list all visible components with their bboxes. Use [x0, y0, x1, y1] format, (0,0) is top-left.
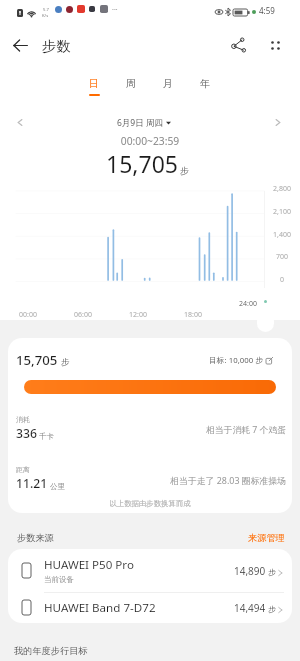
staticText: 相当于走了 28.03 圈标准操场 — [170, 474, 287, 486]
staticText: 06:00 — [68, 310, 98, 320]
button[interactable]: Share — [225, 31, 253, 59]
staticText: 来源管理 — [248, 532, 285, 544]
button[interactable]: Previous day — [11, 113, 29, 131]
staticText: 24:00 — [233, 299, 263, 309]
staticText: 我的年度步行目标 — [14, 645, 88, 657]
staticText: 相当于消耗 7 个鸡蛋 — [206, 424, 286, 436]
button[interactable]: 目标: 10,000 步 — [209, 355, 273, 366]
staticText: 日 — [77, 78, 111, 90]
staticText: 18:00 — [178, 310, 208, 320]
button[interactable]: 来源管理 — [248, 532, 285, 544]
button[interactable]: 6月9日 周四 — [117, 114, 171, 131]
button[interactable]: 周 — [114, 72, 148, 98]
staticText: 0 — [265, 275, 299, 285]
button[interactable]: 年 — [188, 72, 222, 98]
staticText: 步数 — [42, 37, 71, 55]
staticText: 2,800 — [265, 184, 299, 194]
staticText: 距离 — [16, 465, 30, 474]
staticText: 步 — [268, 604, 276, 614]
staticText: K/s — [42, 13, 49, 19]
staticText: 消耗 — [16, 415, 30, 424]
staticText: 15,705 — [106, 148, 178, 179]
button[interactable]: Back — [6, 31, 34, 59]
button[interactable]: HUAWEI Band 7-D72 — [8, 592, 292, 623]
button[interactable]: Next day — [269, 113, 287, 131]
staticText: 千卡 — [39, 432, 54, 441]
staticText: HUAWEI Band 7-D72 — [44, 600, 156, 616]
button[interactable]: Expand details — [257, 312, 274, 332]
staticText: HUAWEI P50 Pro — [44, 557, 134, 573]
staticText: 步 — [180, 165, 189, 176]
staticText: 步数来源 — [17, 532, 54, 544]
staticText: 15,705 — [16, 351, 58, 369]
staticText: 步 — [268, 567, 276, 577]
staticText: 以上数据由步数换算而成 — [0, 499, 300, 508]
staticText: 5.7 — [43, 7, 49, 13]
staticText: 目标: 10,000 步 — [209, 355, 263, 366]
staticText: ··· — [112, 5, 118, 15]
staticText: 11.21 — [16, 475, 48, 492]
staticText: 00:00 — [13, 310, 43, 320]
staticText: 700 — [265, 252, 299, 262]
button[interactable]: 月 — [151, 72, 185, 98]
staticText: 4:59 — [259, 5, 275, 16]
staticText: 年 — [188, 78, 222, 90]
staticText: 2,100 — [265, 207, 299, 217]
staticText: 14,890 — [234, 564, 266, 578]
button[interactable]: 日 — [77, 72, 111, 98]
staticText: 步 — [61, 357, 70, 368]
button[interactable]: More options — [261, 31, 289, 59]
staticText: 周 — [114, 78, 148, 90]
staticText: 公里 — [50, 482, 65, 491]
staticText: 1,400 — [265, 230, 299, 240]
staticText: 14,494 — [234, 601, 266, 615]
staticText: 6月9日 周四 — [117, 117, 163, 129]
staticText: 336 — [16, 425, 37, 442]
staticText: 12:00 — [123, 310, 153, 320]
staticText: 月 — [151, 78, 185, 90]
staticText: 当前设备 — [44, 575, 74, 584]
button[interactable]: HUAWEI P50 Pro — [8, 549, 292, 592]
staticText: 00:00~23:59 — [0, 134, 300, 148]
